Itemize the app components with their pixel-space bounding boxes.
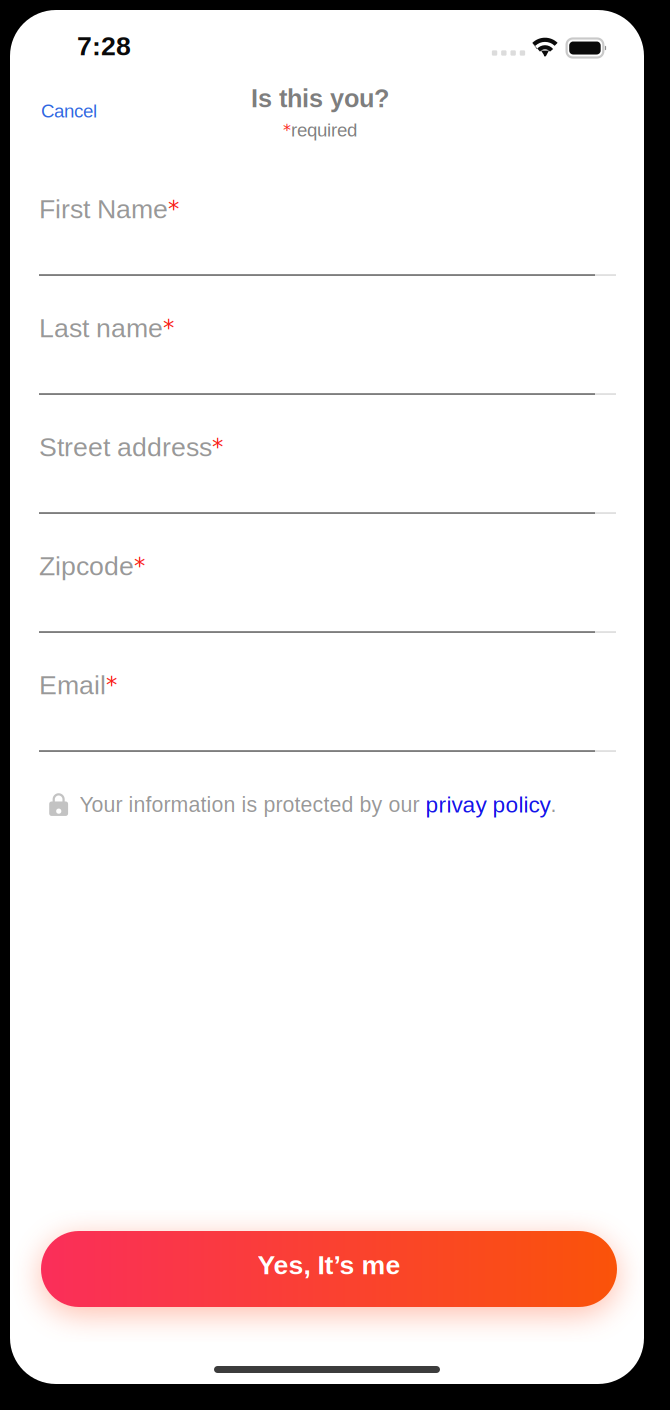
staticText: 7:28: [77, 31, 131, 61]
staticText: privay policy: [425, 792, 550, 817]
staticText: First Name: [39, 194, 168, 224]
staticText: Your information is protected by our: [79, 793, 425, 816]
staticText: *: [212, 434, 223, 460]
staticText: *: [283, 121, 291, 139]
staticText: *: [134, 553, 145, 579]
staticText: Cancel: [41, 101, 97, 121]
staticText: *: [163, 315, 174, 341]
staticText: *: [106, 672, 117, 698]
button[interactable]: privay policy: [425, 792, 550, 817]
staticText: Last name: [39, 313, 163, 343]
staticText: Yes, It’s me: [257, 1250, 400, 1280]
staticText: *: [168, 196, 179, 222]
staticText: Email: [39, 670, 106, 700]
button[interactable]: Cancel: [41, 94, 109, 128]
staticText: Street address: [39, 432, 212, 462]
staticText: Is this you?: [251, 84, 389, 113]
button[interactable]: Yes, It’s me: [41, 1231, 617, 1307]
staticText: .: [550, 793, 556, 816]
staticText: required: [291, 120, 357, 141]
staticText: Zipcode: [39, 551, 134, 581]
